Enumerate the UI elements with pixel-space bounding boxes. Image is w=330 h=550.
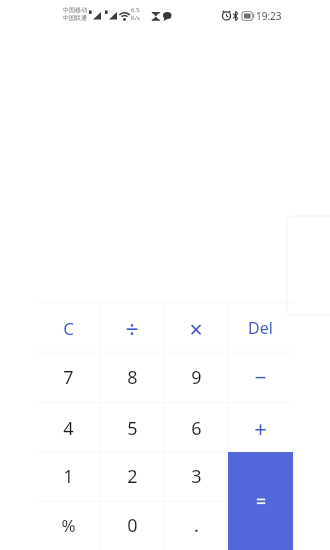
staticText: 6 [191,416,202,441]
button[interactable]: 3 [164,452,228,501]
button[interactable]: 7 [36,352,100,403]
staticText: K/s [131,14,140,22]
button[interactable] [228,452,293,550]
staticText: 0 [127,513,138,538]
staticText: 6.5 [131,6,140,14]
staticText: % [61,514,76,537]
button[interactable]: C [36,303,100,353]
staticText: + [254,413,267,443]
staticText: 中国联通 [63,14,87,22]
staticText: 4 [63,416,74,441]
staticText: Del [248,317,273,339]
staticText: 1 [63,464,74,489]
button[interactable]: − [228,352,292,403]
staticText: . [194,513,199,538]
button[interactable]: 5 [100,403,164,453]
staticText: 3 [191,464,202,489]
button[interactable]: + [228,403,292,453]
staticText: 中国移动 [63,6,87,14]
staticText: 7 [63,365,74,390]
staticText: C [63,317,74,340]
button[interactable]: 0 [100,501,164,550]
staticText: 9 [191,365,202,390]
staticText: ÷ [125,313,139,344]
button[interactable]: × [164,303,228,353]
staticText: 8 [127,365,138,390]
staticText: × [189,313,203,344]
button[interactable]: 6 [164,403,228,453]
staticText: 5 [127,416,138,441]
button[interactable]: 4 [36,403,100,453]
button[interactable]: Del [228,303,292,353]
staticText: 19:23 [256,9,282,23]
button[interactable]: 9 [164,352,228,403]
button[interactable]: 8 [100,352,164,403]
button[interactable]: . [164,501,228,550]
staticText: 2 [127,464,138,489]
button[interactable]: 2 [100,452,164,501]
button[interactable]: 1 [36,452,100,501]
staticText: − [254,363,267,392]
button[interactable]: ÷ [100,303,164,353]
button[interactable]: % [36,501,100,550]
